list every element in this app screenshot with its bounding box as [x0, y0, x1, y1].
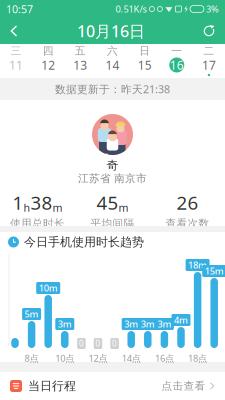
staticText: 3%	[206, 3, 219, 15]
staticText: 日	[139, 44, 150, 57]
staticText: m	[52, 201, 62, 215]
staticText: 1	[12, 190, 23, 215]
button[interactable]: Refresh	[196, 18, 222, 44]
staticText: 10月16日	[77, 20, 145, 42]
staticText: 今日手机使用时长趋势	[24, 235, 144, 249]
staticText: 0	[79, 338, 84, 349]
staticText: 14点	[122, 352, 141, 364]
staticText: 当日行程	[28, 379, 76, 393]
staticText: 3m	[141, 318, 155, 330]
staticText: 10点	[55, 352, 74, 364]
staticText: 3m	[124, 318, 138, 330]
staticText: 奇	[106, 158, 118, 173]
staticText: 3m	[58, 318, 72, 330]
button[interactable]: Back	[3, 18, 26, 44]
staticText: 10m	[39, 282, 58, 294]
staticText: m	[118, 201, 128, 215]
staticText: 15	[138, 57, 152, 73]
staticText: 18点	[188, 352, 207, 364]
button[interactable]: 六	[96, 44, 128, 78]
staticText: 一	[171, 44, 182, 57]
button[interactable]: 日	[129, 44, 161, 78]
staticText: 14	[105, 57, 119, 73]
staticText: 三	[11, 44, 22, 57]
staticText: 8点	[25, 352, 39, 364]
staticText: 4m	[174, 314, 188, 326]
staticText: 12	[41, 57, 55, 73]
staticText: 45	[96, 190, 118, 215]
staticText: 查看次数	[165, 217, 209, 230]
staticText: 使用总时长	[10, 217, 65, 230]
staticText: 16点	[155, 352, 174, 364]
staticText: 3m	[157, 318, 171, 330]
staticText: 四	[43, 44, 54, 57]
staticText: h	[23, 201, 30, 215]
staticText: 点击查看	[161, 379, 205, 392]
staticText: 0	[95, 338, 100, 349]
button[interactable]: 四	[32, 44, 64, 78]
staticText: 六	[107, 44, 118, 57]
staticText: 12点	[88, 352, 107, 364]
button[interactable]: 一	[161, 44, 193, 78]
button[interactable]: 当日行程	[0, 372, 225, 400]
staticText: 17	[202, 57, 216, 73]
staticText: 16	[170, 57, 184, 73]
staticText: 15m	[205, 265, 224, 277]
staticText: 38	[30, 190, 52, 215]
staticText: 10:57	[6, 2, 33, 16]
staticText: 5m	[25, 308, 39, 320]
staticText: 13	[73, 57, 87, 73]
staticText: 26	[176, 190, 198, 215]
staticText: 11	[9, 57, 23, 73]
staticText: 18m	[188, 259, 207, 271]
button[interactable]: 二	[193, 44, 225, 78]
staticText: 数据更新于：昨天21:38	[55, 82, 170, 96]
staticText: 五	[75, 44, 86, 57]
staticText: 二	[203, 44, 214, 57]
staticText: 0	[112, 338, 117, 349]
button[interactable]: 五	[64, 44, 96, 78]
staticText: 江苏省 南京市	[78, 172, 147, 185]
staticText: 平均间隔	[90, 217, 134, 230]
button[interactable]: 三	[0, 44, 32, 78]
staticText: 0.51K/s	[115, 3, 146, 15]
